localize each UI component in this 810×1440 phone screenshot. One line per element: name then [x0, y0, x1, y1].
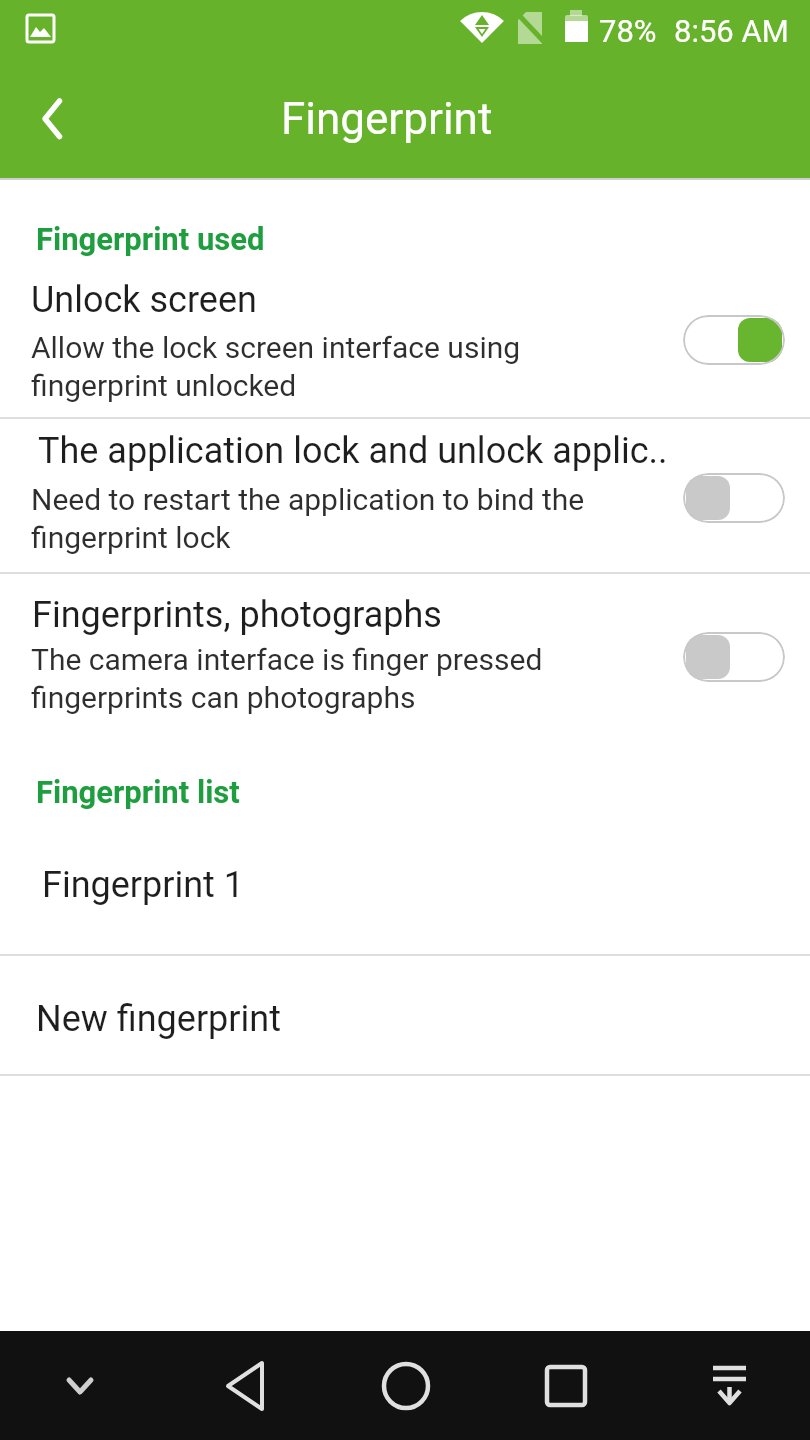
- button[interactable]: Unlock screen: [0, 180, 810, 417]
- button[interactable]: [205, 1351, 285, 1421]
- button[interactable]: The application lock and unlock applic..: [0, 419, 810, 572]
- button[interactable]: Fingerprints, photographs: [0, 574, 810, 770]
- staticText: Allow the lock screen interface using fi…: [31, 330, 521, 403]
- staticText: 78%: [599, 13, 657, 49]
- button[interactable]: [366, 1351, 446, 1421]
- staticText: The camera interface is finger pressed f…: [31, 642, 543, 715]
- button[interactable]: [683, 473, 785, 523]
- button[interactable]: [683, 632, 785, 682]
- button[interactable]: Fingerprint 1: [0, 830, 810, 954]
- staticText: The application lock and unlock applic..: [38, 430, 668, 472]
- staticText: Unlock screen: [31, 279, 257, 321]
- staticText: Fingerprint: [281, 93, 493, 145]
- button[interactable]: New fingerprint: [0, 956, 810, 1074]
- button[interactable]: [526, 1351, 606, 1421]
- staticText: Need to restart the application to bind …: [31, 482, 585, 555]
- button[interactable]: [18, 86, 86, 152]
- button[interactable]: [689, 1351, 769, 1421]
- staticText: Fingerprints, photographs: [32, 594, 442, 636]
- button[interactable]: [40, 1351, 120, 1421]
- button[interactable]: [683, 315, 785, 365]
- staticText: New fingerprint: [36, 998, 281, 1040]
- staticText: Fingerprint 1: [42, 864, 245, 906]
- staticText: 8:56 AM: [674, 13, 789, 49]
- staticText: Fingerprint list: [36, 774, 240, 810]
- staticText: Fingerprint used: [36, 221, 265, 257]
